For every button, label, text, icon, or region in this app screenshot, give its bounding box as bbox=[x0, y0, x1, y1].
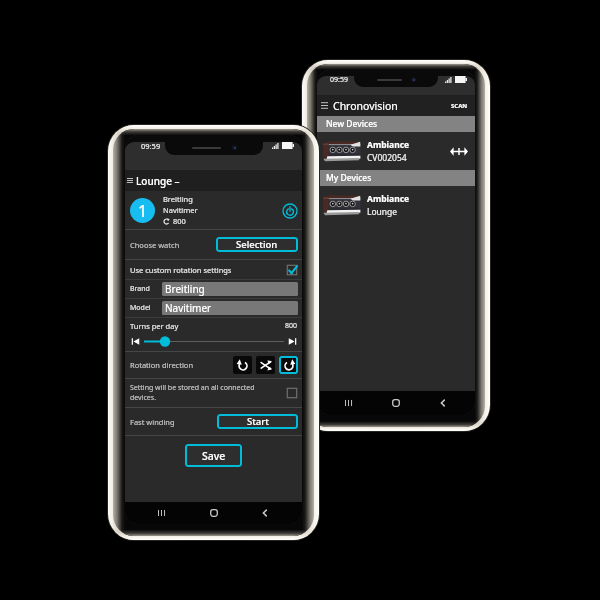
staticText: Selection bbox=[236, 238, 278, 251]
staticText: Navitimer bbox=[163, 205, 198, 215]
staticText: Model bbox=[130, 303, 151, 313]
button[interactable]: Back bbox=[250, 502, 280, 524]
staticText: CV002054 bbox=[367, 152, 407, 164]
staticText: Breitling bbox=[165, 282, 205, 296]
button[interactable]: Minimum bbox=[130, 336, 141, 347]
staticText: Brand bbox=[130, 284, 150, 294]
staticText: SCAN bbox=[451, 102, 468, 110]
staticText: Lounge bbox=[367, 206, 398, 218]
button[interactable]: SCAN bbox=[449, 98, 470, 114]
button[interactable]: Choose watch bbox=[125, 230, 302, 259]
button[interactable]: Lounge – bbox=[125, 170, 302, 191]
staticText: 09:59 bbox=[330, 75, 348, 85]
button[interactable]: Rotation direction bbox=[125, 352, 302, 378]
button[interactable]: Start bbox=[217, 414, 298, 429]
button[interactable]: Counter-clockwise bbox=[233, 356, 252, 374]
button[interactable]: Power bbox=[281, 202, 298, 219]
staticText: 09:59 bbox=[141, 141, 161, 151]
staticText: Choose watch bbox=[130, 240, 180, 250]
staticText: New Devices bbox=[326, 118, 378, 130]
button[interactable]: 1 bbox=[125, 191, 302, 229]
button[interactable]: Ambiance bbox=[317, 186, 475, 224]
staticText: Breitling bbox=[163, 194, 193, 204]
button[interactable]: Home bbox=[199, 502, 229, 524]
staticText: Ambiance bbox=[367, 193, 410, 205]
staticText: Turns per day bbox=[130, 321, 179, 331]
staticText: Chronovision bbox=[333, 99, 398, 113]
button[interactable]: Unchecked bbox=[286, 387, 298, 399]
button[interactable]: Checked bbox=[286, 264, 298, 276]
staticText: Save bbox=[202, 449, 226, 463]
button[interactable]: Alternating bbox=[256, 356, 275, 374]
staticText: Fast winding bbox=[130, 417, 175, 427]
button[interactable]: Fast winding bbox=[125, 408, 302, 435]
button[interactable]: Recents bbox=[334, 391, 364, 415]
button[interactable]: Connect bbox=[449, 144, 469, 158]
staticText: Rotation direction bbox=[130, 360, 194, 370]
staticText: 800 bbox=[285, 321, 298, 331]
staticText: Start bbox=[247, 415, 269, 428]
staticText: Setting will be stored an all connected … bbox=[130, 383, 255, 403]
staticText: Use custom rotation settings bbox=[130, 265, 232, 275]
staticText: 1 bbox=[138, 200, 148, 222]
button[interactable]: Save bbox=[185, 444, 242, 467]
button[interactable]: Recents bbox=[147, 502, 177, 524]
button[interactable]: Navitimer bbox=[162, 301, 298, 315]
staticText: 800 bbox=[173, 216, 186, 226]
button[interactable]: Clockwise bbox=[279, 356, 298, 374]
staticText: Navitimer bbox=[165, 301, 212, 315]
button[interactable]: Setting will be stored an all connected … bbox=[125, 379, 302, 407]
staticText: Lounge – bbox=[136, 174, 180, 188]
button[interactable]: Back bbox=[428, 391, 458, 415]
staticText: Ambiance bbox=[367, 139, 410, 151]
button[interactable]: Maximum bbox=[287, 336, 298, 347]
staticText: My Devices bbox=[326, 172, 372, 184]
button[interactable]: Use custom rotation settings bbox=[125, 260, 302, 279]
button[interactable]: Chronovision bbox=[317, 95, 475, 116]
button[interactable]: Breitling bbox=[162, 282, 298, 296]
button[interactable]: Selection bbox=[216, 237, 298, 252]
button[interactable]: Home bbox=[381, 391, 411, 415]
button[interactable]: Ambiance bbox=[317, 132, 475, 170]
